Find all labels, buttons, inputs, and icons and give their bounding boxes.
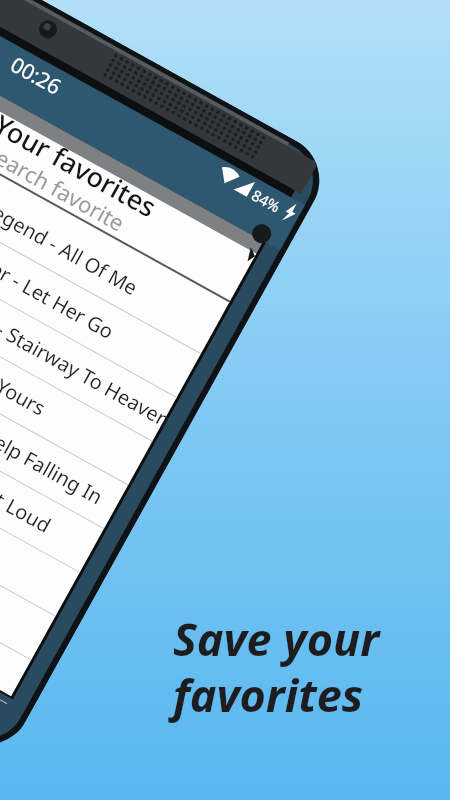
staticText: Presley - Can't Help Falling In bbox=[0, 355, 108, 510]
button[interactable]: Passenger - Let Her Go bbox=[0, 179, 201, 398]
staticText: Ed Sheeran - Thinking Out Loud bbox=[0, 371, 56, 539]
button[interactable] bbox=[0, 485, 31, 704]
button[interactable]: Search favorite bbox=[0, 94, 248, 302]
staticText: Search favorite bbox=[0, 136, 130, 237]
staticText: 00:26 bbox=[5, 50, 67, 102]
staticText: Passenger - Let Her Go bbox=[0, 217, 119, 345]
button[interactable]: Adele - Hello bbox=[0, 441, 55, 660]
staticText: John Legend - All Of Me bbox=[0, 171, 143, 301]
button[interactable]: Presley - Can't Help Falling In bbox=[0, 310, 128, 529]
staticText: Ella Henderson - Yours bbox=[0, 295, 51, 422]
staticText: Save your favorites bbox=[173, 608, 380, 725]
staticText: 84% bbox=[248, 185, 284, 217]
button[interactable]: Avicii - Wake Me Up bbox=[0, 397, 79, 616]
button[interactable]: John Legend - All Of Me bbox=[0, 135, 225, 354]
staticText: Led Zeppelin - Stairway To Heaven bbox=[0, 254, 175, 433]
button[interactable]: Ella Henderson - Yours bbox=[0, 266, 152, 485]
button[interactable]: Led Zeppelin - Stairway To Heaven bbox=[0, 222, 176, 442]
staticText: Your favorites bbox=[0, 105, 163, 225]
button[interactable]: Ed Sheeran - Thinking Out Loud bbox=[0, 354, 104, 573]
